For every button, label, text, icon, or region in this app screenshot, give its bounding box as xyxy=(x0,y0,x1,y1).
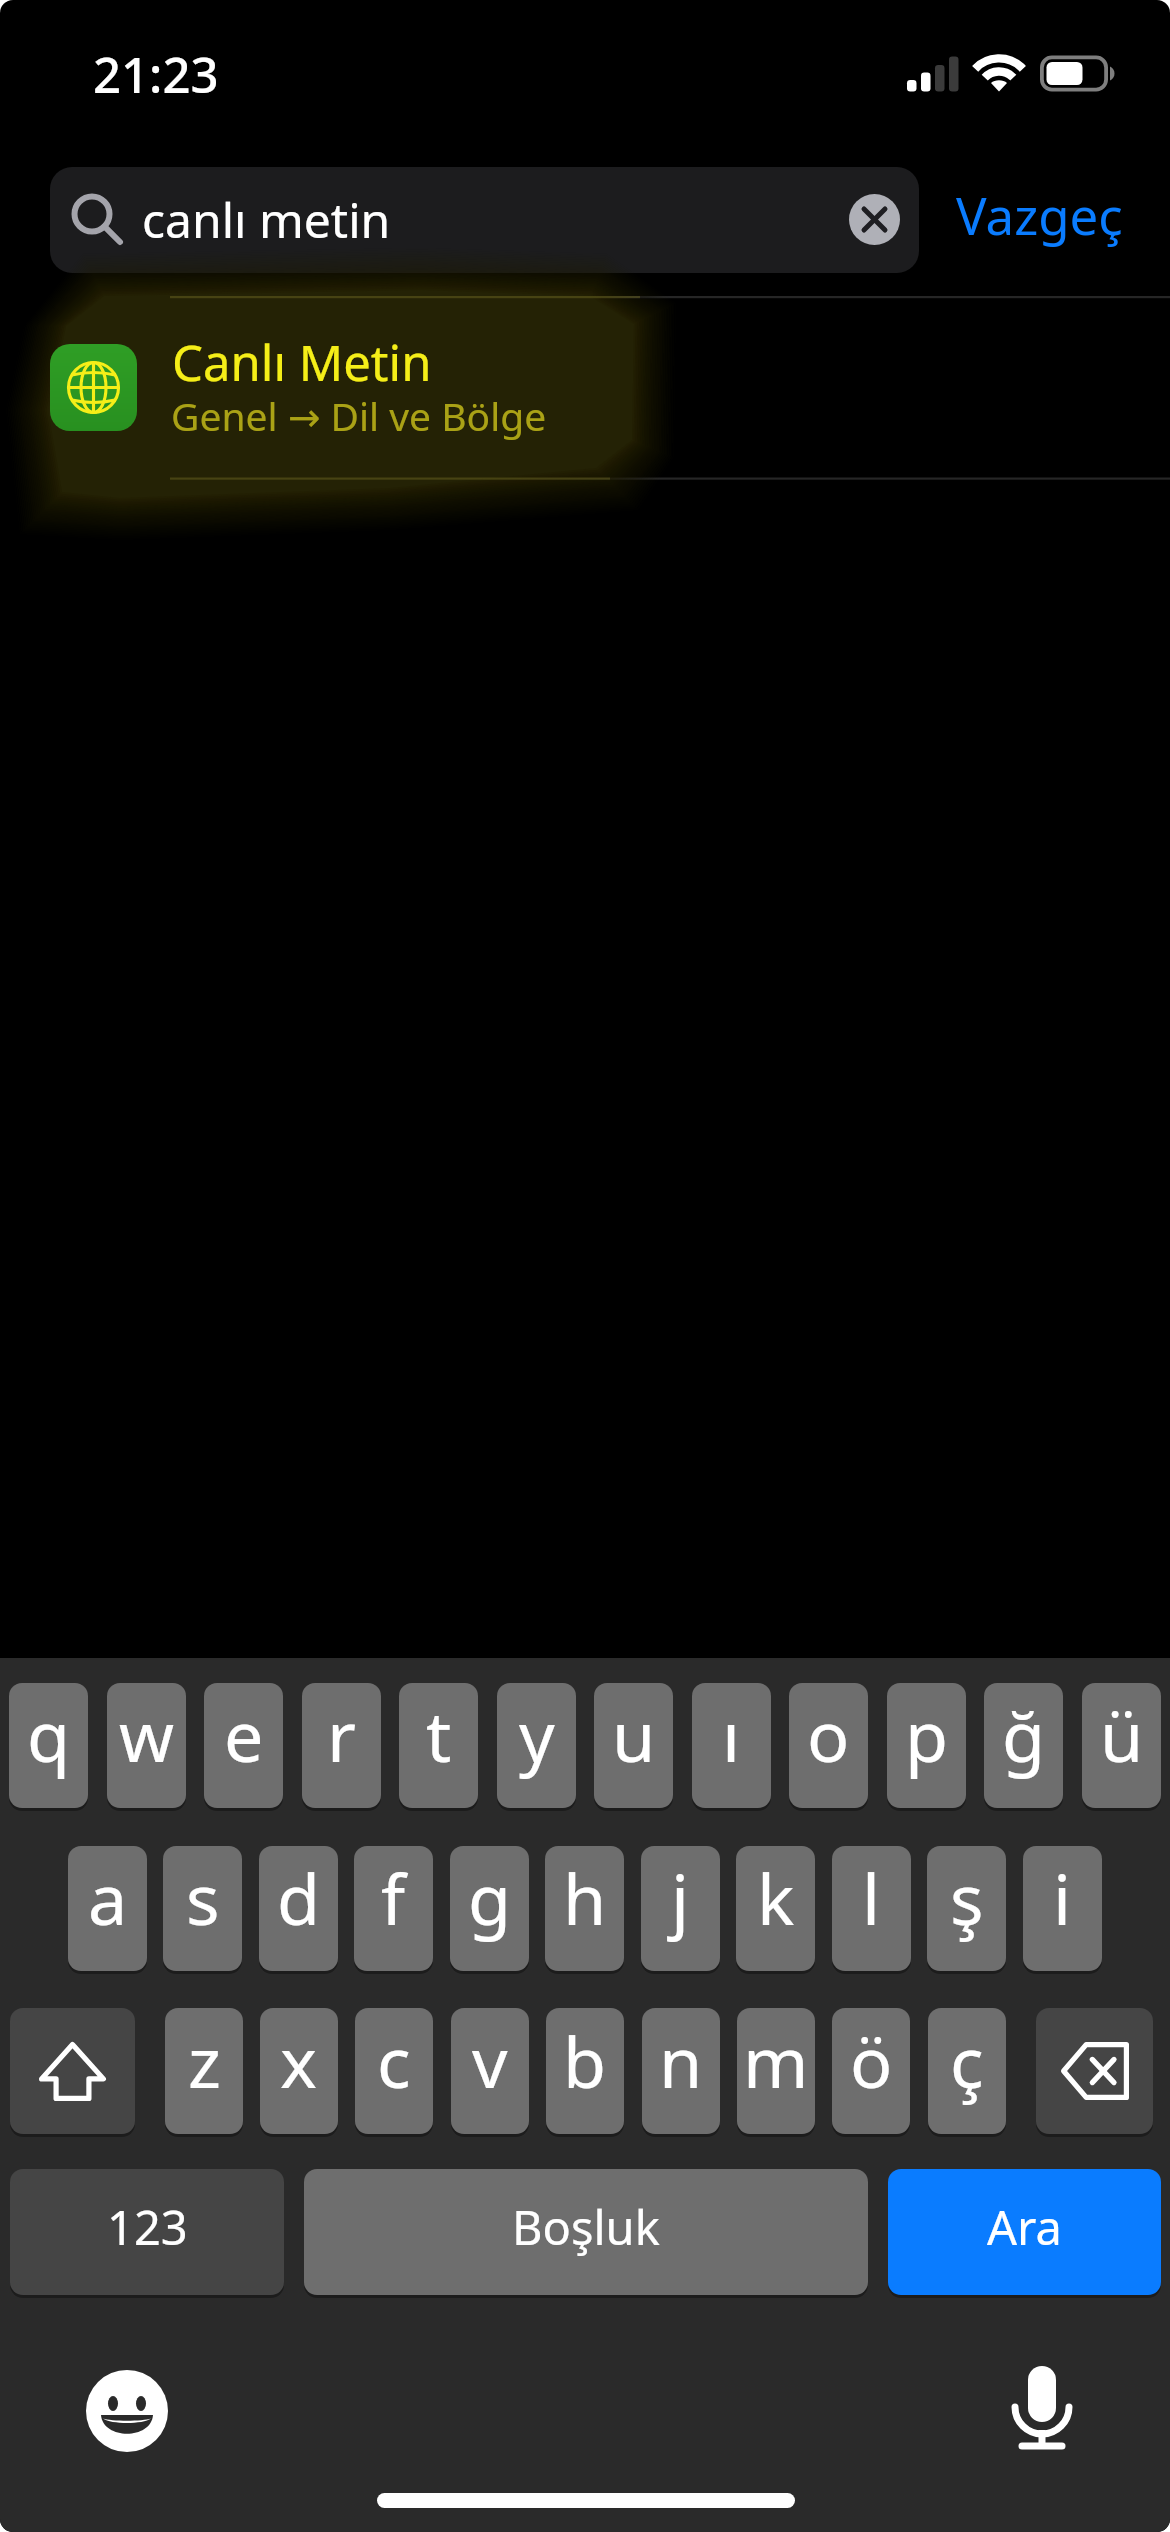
staticText: m xyxy=(743,2013,809,2108)
button[interactable]: ş xyxy=(927,1846,1006,1971)
button[interactable]: p xyxy=(887,1683,966,1808)
button[interactable]: t xyxy=(399,1683,478,1808)
button[interactable]: ç xyxy=(928,2008,1006,2134)
staticText: r xyxy=(327,1687,356,1782)
staticText: q xyxy=(27,1687,71,1782)
button[interactable]: Shift xyxy=(10,2008,135,2134)
staticText: p xyxy=(905,1687,949,1782)
button[interactable]: l xyxy=(832,1846,911,1971)
button[interactable]: Ara xyxy=(888,2169,1161,2295)
staticText: v xyxy=(472,2013,508,2108)
button[interactable] xyxy=(0,296,1170,478)
staticText: 123 xyxy=(107,2195,188,2259)
staticText: ı xyxy=(722,1687,741,1782)
staticText: a xyxy=(88,1850,128,1945)
staticText: i xyxy=(1053,1850,1072,1945)
button[interactable]: Emoji keyboard xyxy=(86,2370,168,2452)
staticText: ü xyxy=(1100,1687,1144,1782)
button[interactable]: v xyxy=(451,2008,529,2134)
button[interactable]: w xyxy=(107,1683,186,1808)
button[interactable]: x xyxy=(260,2008,338,2134)
staticText: Canlı Metin xyxy=(172,329,432,396)
button[interactable]: Backspace xyxy=(1036,2008,1153,2134)
staticText: j xyxy=(671,1850,690,1945)
staticText: t xyxy=(426,1687,452,1782)
staticText: n xyxy=(659,2013,703,2108)
button[interactable]: z xyxy=(165,2008,243,2134)
staticText: s xyxy=(186,1850,220,1945)
button[interactable]: k xyxy=(736,1846,815,1971)
button[interactable]: u xyxy=(594,1683,673,1808)
staticText: canlı metin xyxy=(142,187,391,252)
staticText: Ara xyxy=(987,2195,1062,2259)
staticText: ş xyxy=(950,1850,984,1945)
staticText: b xyxy=(563,2013,607,2108)
button[interactable]: ü xyxy=(1082,1683,1161,1808)
button[interactable]: o xyxy=(789,1683,868,1808)
button[interactable]: m xyxy=(737,2008,815,2134)
staticText: c xyxy=(377,2013,411,2108)
staticText: k xyxy=(757,1850,795,1945)
staticText: g xyxy=(468,1850,512,1945)
button[interactable]: j xyxy=(641,1846,720,1971)
button[interactable]: ı xyxy=(692,1683,771,1808)
staticText: w xyxy=(119,1687,175,1782)
button[interactable]: b xyxy=(546,2008,624,2134)
button[interactable]: a xyxy=(68,1846,147,1971)
staticText: Genel → Dil ve Bölge xyxy=(171,389,547,442)
button[interactable]: y xyxy=(497,1683,576,1808)
button[interactable]: 123 xyxy=(10,2169,284,2295)
button[interactable]: i xyxy=(1023,1846,1102,1971)
button[interactable]: Clear text xyxy=(849,194,900,245)
staticText: e xyxy=(224,1687,264,1782)
button[interactable]: Boşluk xyxy=(304,2169,868,2295)
button[interactable]: e xyxy=(204,1683,283,1808)
button[interactable]: canlı metin xyxy=(50,167,919,273)
staticText: f xyxy=(381,1850,406,1945)
button[interactable]: Dictation xyxy=(1002,2358,1082,2458)
staticText: y xyxy=(519,1687,555,1782)
staticText: Boşluk xyxy=(512,2195,660,2259)
staticText: u xyxy=(612,1687,656,1782)
button[interactable]: n xyxy=(642,2008,720,2134)
button[interactable]: c xyxy=(355,2008,433,2134)
button[interactable]: h xyxy=(545,1846,624,1971)
button[interactable]: d xyxy=(259,1846,338,1971)
button[interactable]: s xyxy=(163,1846,242,1971)
staticText: ğ xyxy=(1002,1687,1046,1782)
staticText: z xyxy=(188,2013,221,2108)
button[interactable]: ö xyxy=(832,2008,910,2134)
staticText: ö xyxy=(850,2013,893,2108)
staticText: o xyxy=(807,1687,850,1782)
staticText: ç xyxy=(950,2013,984,2108)
button[interactable]: Vazgeç xyxy=(944,167,1134,273)
staticText: Vazgeç xyxy=(956,180,1123,249)
staticText: h xyxy=(563,1850,607,1945)
button[interactable]: q xyxy=(9,1683,88,1808)
staticText: l xyxy=(862,1850,881,1945)
staticText: d xyxy=(277,1850,321,1945)
button[interactable]: f xyxy=(354,1846,433,1971)
staticText: 21:23 xyxy=(93,41,219,108)
button[interactable]: g xyxy=(450,1846,529,1971)
button[interactable]: r xyxy=(302,1683,381,1808)
staticText: x xyxy=(280,2013,318,2108)
button[interactable]: ğ xyxy=(984,1683,1063,1808)
